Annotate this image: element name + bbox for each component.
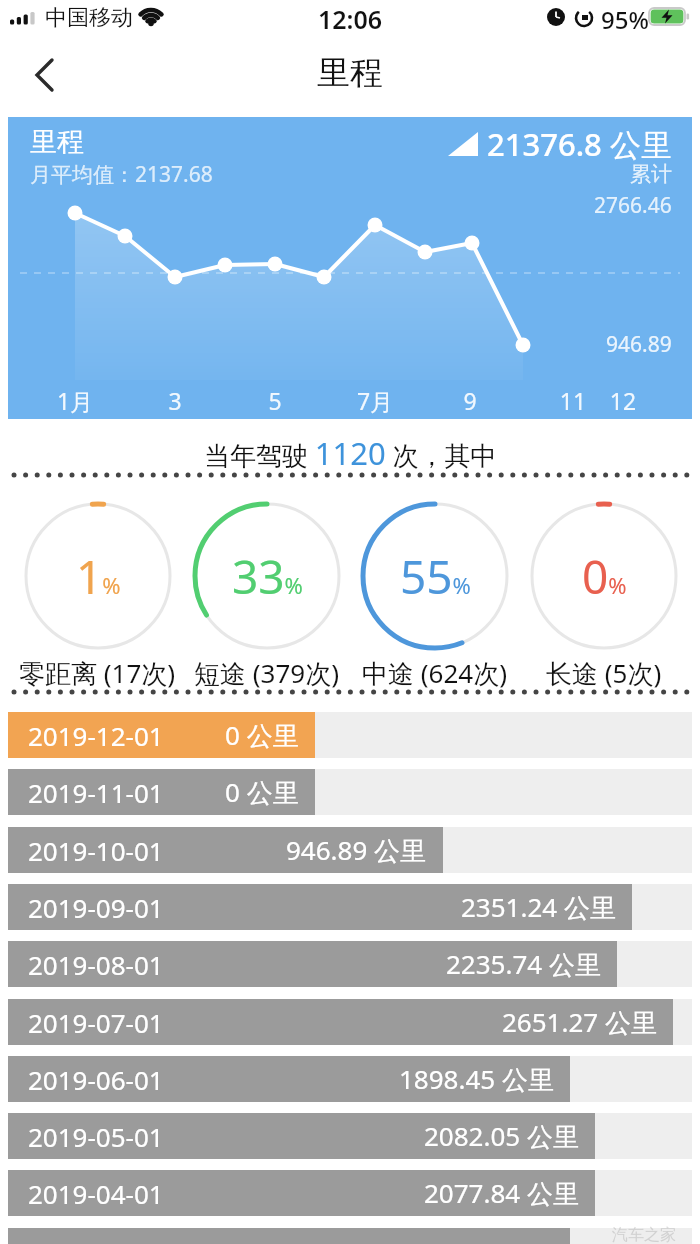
staticText: 21376.8 公里	[487, 123, 672, 165]
button[interactable]: 2019-06-01	[8, 1056, 692, 1102]
staticText: 2019-07-01	[28, 1005, 164, 1040]
button[interactable]: 2019-05-01	[8, 1113, 692, 1159]
staticText: 1月	[40, 385, 110, 416]
button[interactable]: 2019-12-01	[8, 712, 692, 758]
staticText: 2082.05 公里	[424, 1118, 579, 1154]
staticText: 7月	[340, 385, 410, 416]
staticText: 里程	[0, 52, 700, 94]
staticText: 2019-10-01	[28, 833, 164, 868]
button[interactable]	[8, 1228, 692, 1244]
staticText: 33%	[232, 545, 303, 608]
staticText: 12	[588, 385, 658, 416]
staticText: 2019-06-01	[28, 1062, 164, 1097]
staticText: 946.89	[606, 330, 672, 359]
staticText: 2351.24 公里	[461, 889, 616, 925]
staticText: 中途 (624次)	[362, 655, 507, 691]
staticText: 2077.84 公里	[424, 1175, 579, 1211]
staticText: 累计	[630, 161, 672, 187]
staticText: 中国移动	[45, 4, 133, 32]
staticText: 0 公里	[225, 717, 299, 753]
button[interactable]: 2019-07-01	[8, 999, 692, 1045]
staticText: 汽车之家	[612, 1225, 676, 1244]
staticText: 1%	[76, 545, 121, 608]
staticText: 1898.45 公里	[399, 1061, 554, 1097]
button[interactable]: 2019-08-01	[8, 941, 692, 987]
staticText: 当年驾驶 1120 次，其中	[204, 432, 497, 474]
staticText: 2651.27 公里	[502, 1004, 657, 1040]
staticText: 短途 (379次)	[194, 655, 339, 691]
staticText: 2019-09-01	[28, 890, 164, 925]
button[interactable]: 2019-11-01	[8, 769, 692, 815]
staticText: 零距离 (17次)	[19, 655, 176, 691]
staticText: 里程	[30, 125, 84, 159]
staticText: 3	[140, 385, 210, 416]
staticText: 月平均值：2137.68	[30, 160, 213, 189]
staticText: 11	[538, 385, 608, 416]
staticText: 2766.46	[594, 191, 672, 220]
staticText: 9	[435, 385, 505, 416]
staticText: 2019-05-01	[28, 1119, 164, 1154]
staticText: 2019-08-01	[28, 947, 164, 982]
staticText: 2235.74 公里	[446, 946, 601, 982]
staticText: 2019-04-01	[28, 1176, 164, 1211]
staticText: 2019-12-01	[28, 718, 164, 753]
button[interactable]: 2019-09-01	[8, 884, 692, 930]
staticText: 0%	[582, 545, 627, 608]
staticText: 2019-11-01	[28, 775, 164, 810]
button[interactable]: 2019-04-01	[8, 1170, 692, 1216]
staticText: 12:06	[0, 2, 700, 36]
button[interactable]: 2019-10-01	[8, 827, 692, 873]
staticText: 0 公里	[225, 774, 299, 810]
staticText: 95%	[601, 3, 649, 36]
staticText: 长途 (5次)	[546, 655, 662, 691]
staticText: 946.89 公里	[286, 832, 427, 868]
button[interactable]	[20, 50, 70, 100]
staticText: 55%	[400, 545, 471, 608]
staticText: 5	[240, 385, 310, 416]
